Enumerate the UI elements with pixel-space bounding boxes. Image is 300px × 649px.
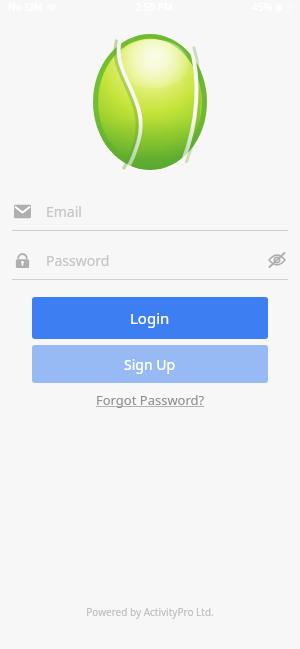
staticText: No SIM	[8, 0, 43, 14]
staticText: Powered by ActivityPro Ltd.	[86, 605, 214, 619]
staticText: Login	[130, 308, 170, 328]
button[interactable]: Password	[0, 241, 300, 279]
button[interactable]: Forgot Password?	[90, 388, 211, 412]
staticText: Email	[46, 202, 82, 221]
staticText: Sign Up	[124, 355, 176, 374]
button[interactable]: Email	[0, 192, 300, 230]
staticText: 2:50 PM	[135, 0, 173, 14]
staticText: Password	[46, 251, 110, 270]
staticText: 45%	[252, 0, 272, 14]
other: Email	[14, 203, 31, 220]
button[interactable]: Show password	[266, 249, 288, 271]
other: Tennis ball logo	[93, 34, 207, 170]
other: Password	[14, 252, 31, 269]
button[interactable]: Login	[32, 297, 268, 339]
button[interactable]: Sign Up	[32, 345, 268, 383]
staticText: Forgot Password?	[96, 391, 205, 409]
